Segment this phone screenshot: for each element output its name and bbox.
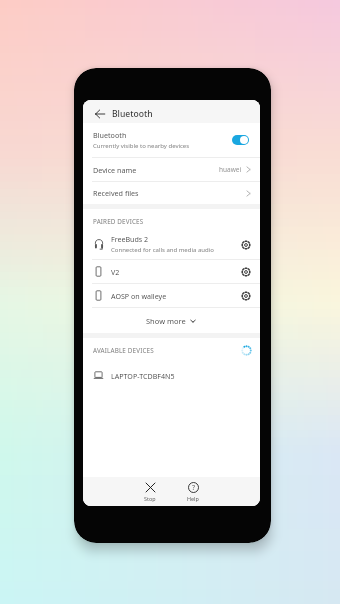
button[interactable]: ? [180,482,206,502]
button[interactable]: LAPTOP-TCDBF4N5 [83,362,260,389]
staticText: AVAILABLE DEVICES [93,346,154,355]
staticText: Device name [93,165,137,175]
button[interactable]: Settings [239,265,252,278]
button[interactable]: Show more [83,308,260,333]
staticText: Bluetooth [93,130,127,140]
button[interactable]: Settings [239,289,252,302]
button[interactable]: Stop [137,482,163,502]
staticText: huawei [219,165,242,174]
button[interactable]: V2 [83,260,260,283]
button[interactable]: AOSP on walleye [83,284,260,307]
button[interactable]: FreeBuds 2 [83,233,260,259]
staticText: FreeBuds 2 [111,234,149,244]
button[interactable]: Bluetooth toggle [232,135,249,145]
staticText: Connected for calls and media audio [111,246,214,254]
button[interactable]: Back [93,107,106,120]
button[interactable]: Bluetooth [83,123,260,157]
staticText: Show more [146,316,186,326]
button[interactable]: Received files [83,182,260,204]
staticText: PAIRED DEVICES [93,217,144,226]
staticText: Help [187,495,199,502]
staticText: AOSP on walleye [111,291,167,301]
staticText: Stop [144,495,156,502]
button[interactable]: Device name [83,158,260,181]
staticText: Received files [93,188,139,198]
staticText: Currently visible to nearby devices [93,142,190,150]
button[interactable]: Settings [239,238,252,251]
staticText: Bluetooth [112,108,153,120]
staticText: ? [192,483,196,493]
staticText: V2 [111,267,120,277]
staticText: LAPTOP-TCDBF4N5 [111,371,175,381]
